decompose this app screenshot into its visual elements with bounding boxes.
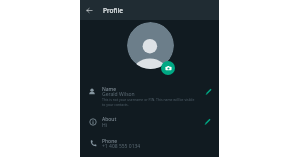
staticText: Hi — [102, 122, 107, 129]
staticText: Name — [102, 86, 117, 93]
button[interactable]: Change profile photo — [161, 61, 175, 75]
button[interactable]: Edit name — [204, 87, 213, 96]
button[interactable]: Back — [83, 4, 96, 17]
staticText: +1 408 555 0134 — [102, 143, 141, 150]
staticText: About — [102, 116, 117, 123]
staticText: Gerald Wilson — [102, 91, 135, 98]
staticText: This is not your username or PIN. This n… — [102, 97, 222, 107]
button[interactable] — [80, 82, 219, 111]
staticText: Phone — [102, 138, 118, 145]
staticText: Profile — [103, 6, 123, 15]
button[interactable]: Edit about — [203, 117, 212, 126]
button[interactable] — [80, 134, 219, 155]
button[interactable] — [80, 113, 219, 134]
